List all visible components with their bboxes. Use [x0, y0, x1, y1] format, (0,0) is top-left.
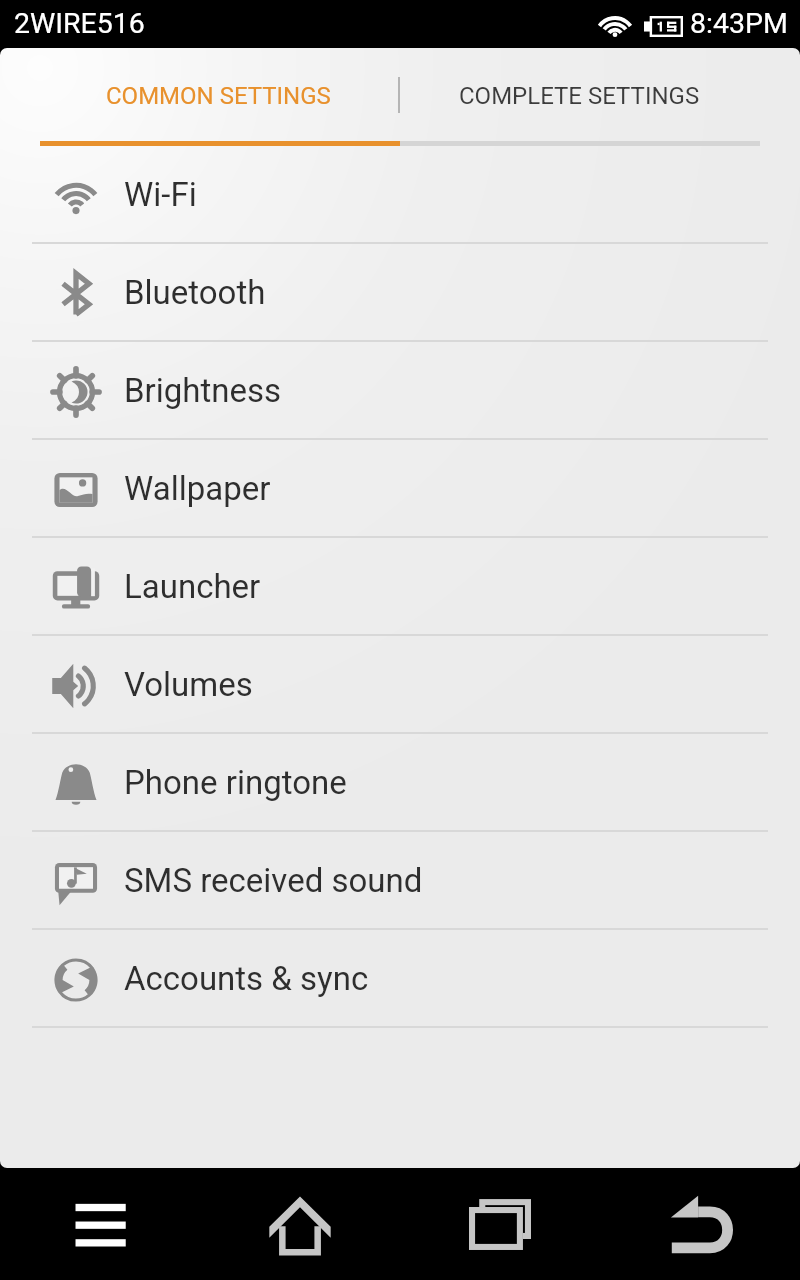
staticText: Phone ringtone — [124, 763, 347, 802]
staticText: COMPLETE SETTINGS — [459, 82, 700, 110]
button[interactable]: Home — [200, 1168, 400, 1280]
button[interactable]: Menu — [0, 1168, 200, 1280]
button[interactable]: COMMON SETTINGS — [0, 48, 400, 146]
button[interactable]: Brightness — [0, 342, 800, 440]
staticText: Launcher — [124, 567, 261, 606]
staticText: Accounts & sync — [124, 959, 369, 998]
button[interactable]: COMPLETE SETTINGS — [400, 48, 800, 146]
button[interactable]: Back — [600, 1168, 800, 1280]
button[interactable]: Wi-Fi — [0, 146, 800, 244]
button[interactable]: Phone ringtone — [0, 734, 800, 832]
staticText: COMMON SETTINGS — [106, 82, 331, 110]
button[interactable]: Launcher — [0, 538, 800, 636]
staticText: SMS received sound — [124, 861, 423, 900]
staticText: Wi-Fi — [124, 175, 197, 214]
staticText: Bluetooth — [124, 273, 266, 312]
staticText: Wallpaper — [124, 469, 271, 508]
button[interactable]: SMS received sound — [0, 832, 800, 930]
button[interactable]: Recent apps — [400, 1168, 600, 1280]
staticText: 8:43PM — [690, 7, 788, 40]
staticText: 2WIRE516 — [14, 7, 145, 40]
button[interactable]: Wallpaper — [0, 440, 800, 538]
button[interactable]: Bluetooth — [0, 244, 800, 342]
button[interactable]: Volumes — [0, 636, 800, 734]
staticText: Volumes — [124, 665, 253, 704]
staticText: Brightness — [124, 371, 282, 410]
button[interactable]: Accounts & sync — [0, 930, 800, 1028]
